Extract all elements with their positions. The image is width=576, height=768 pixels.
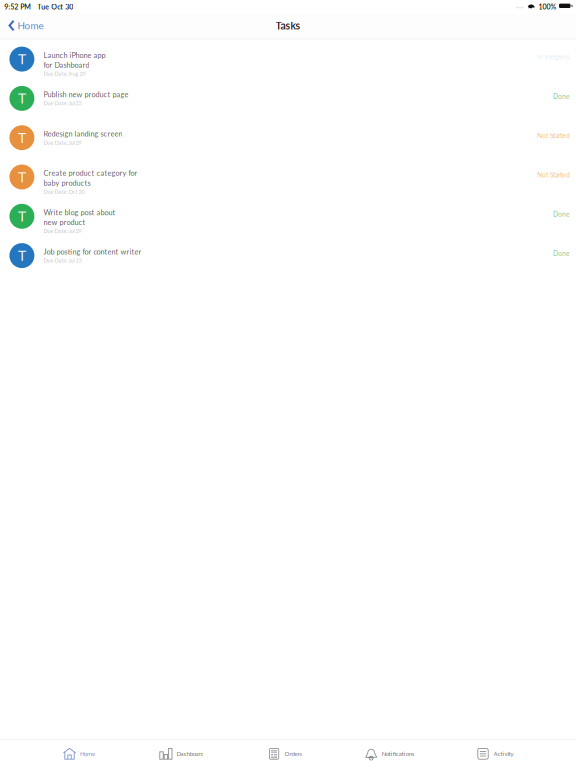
staticText: Due Date: Jul 29 — [43, 227, 81, 234]
staticText: 9:52 PM — [4, 3, 31, 11]
staticText: Notifications — [382, 750, 415, 757]
staticText: Due Date: Aug 29 — [43, 70, 85, 77]
button[interactable]: T — [0, 197, 576, 236]
staticText: T — [18, 129, 26, 146]
button[interactable]: Activity — [476, 748, 513, 760]
staticText: Tasks — [275, 19, 300, 32]
staticText: Due Date: Jul 29 — [43, 139, 81, 146]
staticText: Due Date: Jul 23 — [43, 100, 81, 106]
staticText: Redesign landing screen — [43, 129, 122, 138]
staticText: Dashboard — [176, 750, 203, 757]
button[interactable]: T — [0, 118, 576, 157]
button[interactable]: T — [0, 39, 576, 79]
staticText: for Dashboard — [43, 60, 89, 69]
staticText: Write blog post about — [43, 208, 115, 217]
button[interactable]: T — [0, 79, 576, 118]
button[interactable]: Notifications — [365, 748, 415, 760]
staticText: Due Date: Oct 20 — [43, 188, 84, 195]
button[interactable]: Dashboard — [159, 748, 203, 760]
staticText: Launch iPhone app — [43, 51, 105, 59]
staticText: Done — [553, 249, 570, 257]
staticText: Tue Oct 30 — [37, 3, 73, 11]
button[interactable]: Home — [8, 20, 43, 31]
button[interactable]: T — [0, 236, 576, 275]
staticText: Done — [553, 92, 570, 100]
staticText: T — [18, 247, 26, 264]
staticText: Not Started — [537, 171, 570, 179]
staticText: Create product category for — [43, 169, 137, 177]
staticText: In Progress — [537, 53, 570, 61]
button[interactable]: Home — [63, 748, 95, 760]
staticText: T — [18, 208, 26, 224]
staticText: Job posting for content writer — [43, 247, 141, 256]
staticText: T — [18, 90, 26, 107]
button[interactable]: Orders — [268, 748, 303, 760]
staticText: 100% — [538, 3, 556, 11]
staticText: T — [18, 168, 26, 185]
staticText: baby products — [43, 178, 90, 187]
staticText: Not Started — [537, 132, 570, 140]
staticText: T — [18, 50, 26, 67]
staticText: Home — [17, 20, 43, 31]
staticText: Done — [553, 210, 570, 218]
staticText: new product — [43, 218, 85, 226]
staticText: Activity — [493, 750, 513, 757]
staticText: Home — [80, 750, 95, 757]
staticText: Orders — [285, 750, 303, 757]
staticText: Due Date: Jul 13 — [43, 257, 81, 264]
button[interactable]: T — [0, 157, 576, 197]
staticText: Publish new product page — [43, 90, 128, 99]
